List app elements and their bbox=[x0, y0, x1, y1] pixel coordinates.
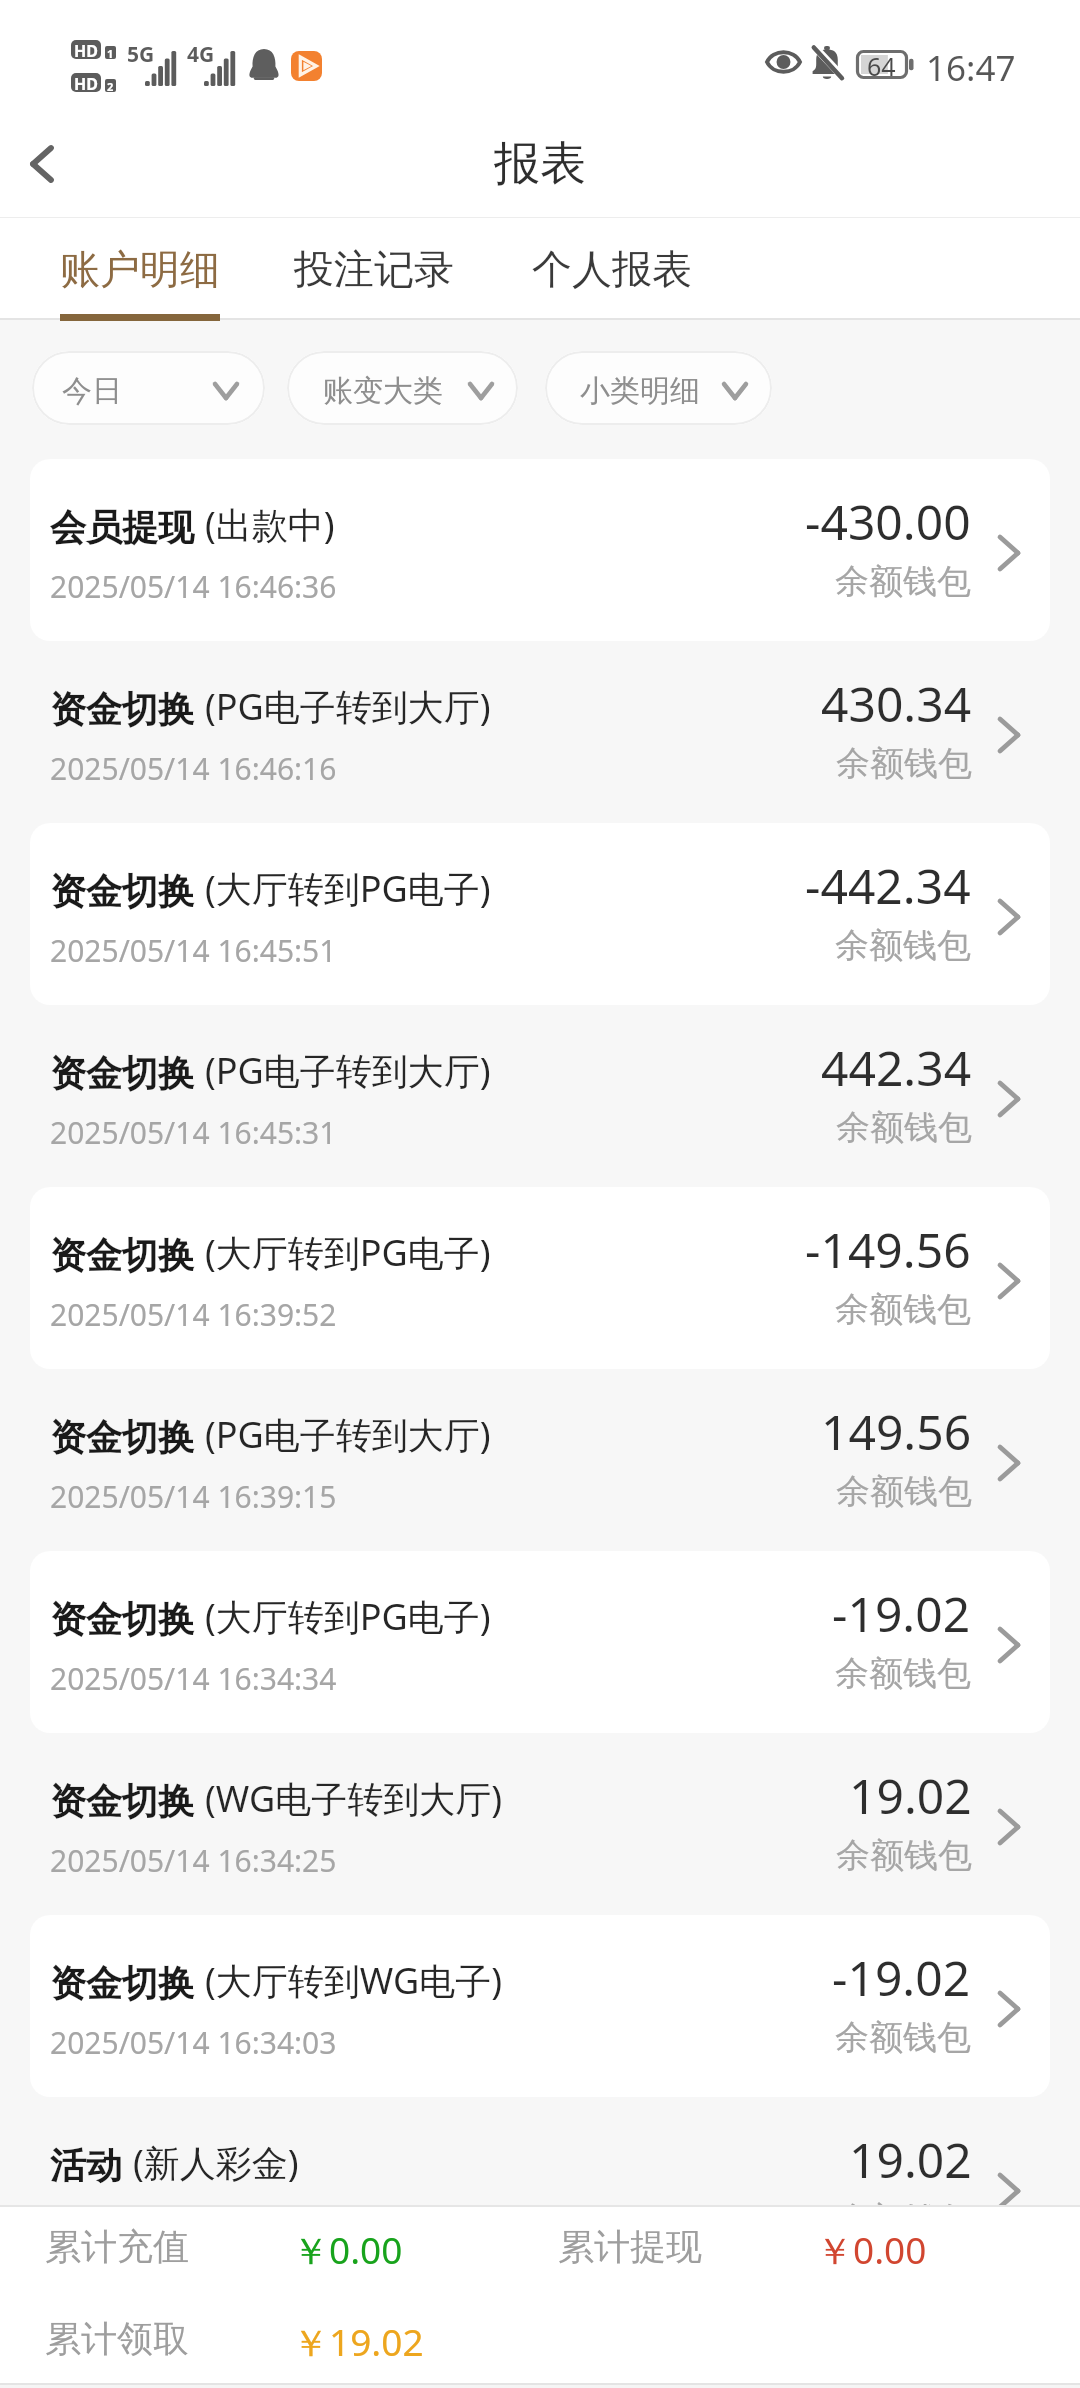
button[interactable]: Back bbox=[0, 110, 84, 217]
staticText: 2025/05/14 16:34:03 bbox=[50, 2022, 337, 2063]
staticText: 16:47 bbox=[926, 44, 1016, 92]
staticText: (PG电子转到大厅) bbox=[205, 682, 491, 731]
staticText: 2025/05/14 16:34:25 bbox=[50, 1840, 337, 1881]
staticText: (PG电子转到大厅) bbox=[205, 1410, 491, 1459]
button[interactable]: 资金切换 bbox=[30, 1187, 1050, 1369]
button[interactable]: 活动 bbox=[0, 2097, 1080, 2205]
staticText: 余额钱包 bbox=[836, 742, 972, 785]
staticText: 资金切换 bbox=[50, 687, 194, 732]
staticText: 活动 bbox=[50, 2143, 122, 2188]
button[interactable]: 资金切换 bbox=[0, 1005, 1080, 1187]
staticText: (大厅转到PG电子) bbox=[205, 1592, 491, 1641]
staticText: ￥0.00 bbox=[816, 2224, 927, 2275]
staticText: 2025/05/14 16:46:36 bbox=[50, 566, 337, 607]
staticText: 余额钱包 bbox=[835, 1288, 971, 1331]
staticText: 余额钱包 bbox=[835, 924, 971, 967]
staticText: 今日 bbox=[62, 372, 122, 410]
button[interactable]: 账变大类 bbox=[287, 351, 518, 425]
staticText: 余额钱包 bbox=[836, 1470, 972, 1513]
staticText: 账户明细 bbox=[60, 244, 220, 294]
staticText: -442.34 bbox=[805, 853, 971, 918]
staticText: (WG电子转到大厅) bbox=[205, 1774, 502, 1823]
staticText: 2025/05/14 16:45:51 bbox=[50, 930, 337, 971]
staticText: 资金切换 bbox=[50, 1961, 194, 2006]
button[interactable]: 小类明细 bbox=[545, 351, 772, 425]
staticText: 余额钱包 bbox=[836, 2198, 972, 2205]
button[interactable]: 资金切换 bbox=[30, 1915, 1050, 2097]
button[interactable]: 资金切换 bbox=[30, 1551, 1050, 1733]
staticText: 账变大类 bbox=[323, 372, 443, 410]
staticText: 累计充值 bbox=[45, 2224, 189, 2269]
staticText: 个人报表 bbox=[532, 244, 692, 294]
button[interactable]: 资金切换 bbox=[0, 1733, 1080, 1915]
staticText: 报表 bbox=[494, 135, 586, 193]
staticText: 余额钱包 bbox=[836, 1106, 972, 1149]
staticText: 资金切换 bbox=[50, 1051, 194, 1096]
staticText: 2025/05/14 16:46:16 bbox=[50, 748, 337, 789]
staticText: (大厅转到PG电子) bbox=[205, 1228, 491, 1277]
staticText: 资金切换 bbox=[50, 1597, 194, 1642]
button[interactable]: 个人报表 bbox=[510, 218, 714, 318]
staticText: ￥19.02 bbox=[292, 2316, 424, 2367]
staticText: 资金切换 bbox=[50, 869, 194, 914]
button[interactable]: 资金切换 bbox=[30, 823, 1050, 1005]
staticText: 2 bbox=[107, 79, 114, 92]
staticText: 1 bbox=[107, 46, 114, 59]
button[interactable]: 会员提现 bbox=[30, 459, 1050, 641]
staticText: -19.02 bbox=[832, 1581, 971, 1646]
staticText: -430.00 bbox=[805, 489, 971, 554]
staticText: 资金切换 bbox=[50, 1233, 194, 1278]
staticText: 442.34 bbox=[821, 1035, 972, 1100]
staticText: 余额钱包 bbox=[835, 560, 971, 603]
staticText: 小类明细 bbox=[580, 372, 700, 410]
staticText: (PG电子转到大厅) bbox=[205, 1046, 491, 1095]
staticText: 5G bbox=[127, 40, 155, 69]
staticText: 余额钱包 bbox=[836, 1834, 972, 1877]
staticText: 2025/05/14 16:39:52 bbox=[50, 1294, 337, 1335]
staticText: 资金切换 bbox=[50, 1779, 194, 1824]
staticText: 投注记录 bbox=[294, 244, 454, 294]
staticText: 149.56 bbox=[821, 1399, 972, 1464]
staticText: 资金切换 bbox=[50, 1415, 194, 1460]
staticText: 2025/05/14 16:34:34 bbox=[50, 1658, 337, 1699]
button[interactable]: 资金切换 bbox=[0, 1369, 1080, 1551]
staticText: 余额钱包 bbox=[835, 2016, 971, 2059]
staticText: 余额钱包 bbox=[835, 1652, 971, 1695]
staticText: 4G bbox=[187, 40, 215, 69]
staticText: 累计领取 bbox=[45, 2316, 189, 2361]
staticText: (大厅转到WG电子) bbox=[205, 1956, 502, 2005]
staticText: 430.34 bbox=[821, 671, 972, 736]
staticText: 64 bbox=[867, 49, 896, 78]
button[interactable]: 投注记录 bbox=[272, 218, 476, 318]
staticText: 累计提现 bbox=[558, 2224, 702, 2269]
staticText: -149.56 bbox=[805, 1217, 971, 1282]
staticText: (新人彩金) bbox=[133, 2138, 299, 2187]
staticText: 2025/05/14 16:45:31 bbox=[50, 1112, 337, 1153]
button[interactable]: 账户明细 bbox=[38, 218, 242, 318]
staticText: 会员提现 bbox=[50, 505, 194, 550]
staticText: ￥0.00 bbox=[292, 2224, 403, 2275]
staticText: (大厅转到PG电子) bbox=[205, 864, 491, 913]
staticText: HD bbox=[74, 73, 98, 92]
button[interactable]: 今日 bbox=[32, 351, 265, 425]
staticText: -19.02 bbox=[832, 1945, 971, 2010]
staticText: 2025/05/14 16:39:15 bbox=[50, 1476, 337, 1517]
staticText: 19.02 bbox=[849, 1763, 972, 1828]
staticText: HD bbox=[74, 40, 98, 59]
staticText: 19.02 bbox=[849, 2127, 972, 2192]
staticText: (出款中) bbox=[205, 500, 335, 549]
button[interactable]: 资金切换 bbox=[0, 641, 1080, 823]
